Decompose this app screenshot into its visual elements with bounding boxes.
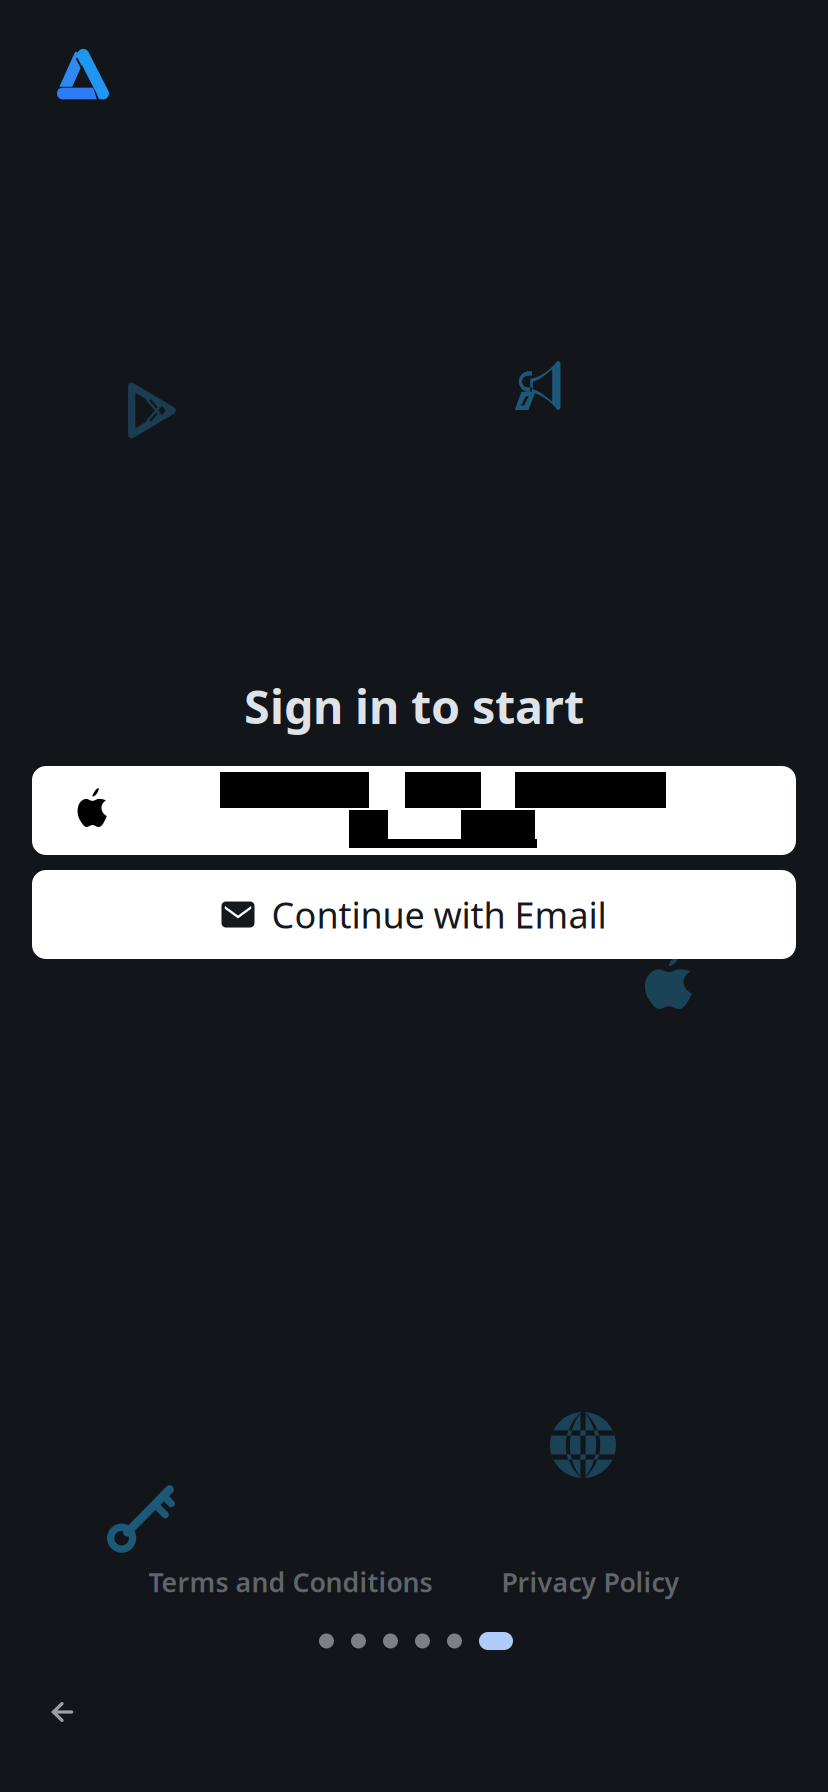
button[interactable]: Back	[19, 1672, 105, 1752]
button[interactable]: Continue with Email	[32, 870, 796, 959]
staticText: Continue with Email	[271, 891, 606, 938]
staticText: Terms and Conditions	[148, 1564, 432, 1600]
button[interactable]: Terms and Conditions	[148, 1562, 432, 1602]
button[interactable]: Sign in with Apple	[32, 766, 796, 855]
staticText: Sign in to start	[244, 675, 584, 737]
staticText: Privacy Policy	[501, 1564, 679, 1600]
button[interactable]: Privacy Policy	[501, 1562, 679, 1602]
